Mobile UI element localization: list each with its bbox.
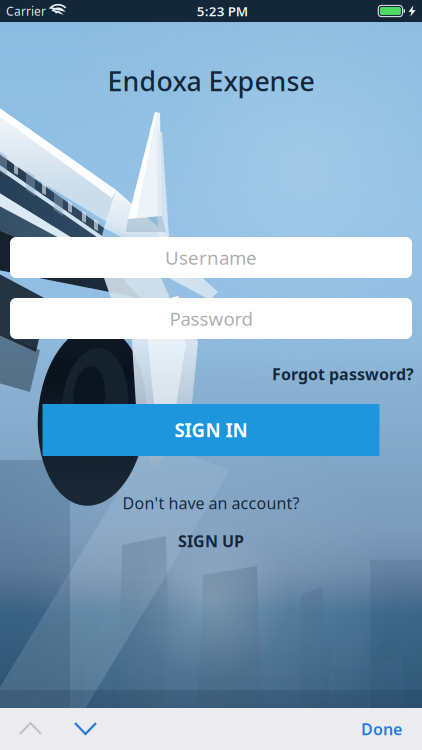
button[interactable]: Password: [10, 298, 412, 339]
staticText: Password: [169, 306, 252, 331]
staticText: Username: [165, 245, 257, 270]
button[interactable]: Username: [10, 237, 412, 278]
staticText: Done: [361, 718, 402, 740]
staticText: Don't have an account?: [122, 492, 299, 514]
button[interactable]: Next field: [58, 708, 116, 750]
button[interactable]: Previous field: [0, 708, 58, 750]
staticText: SIGN IN: [174, 418, 247, 442]
button[interactable]: SIGN IN: [42, 404, 379, 456]
button[interactable]: Done: [347, 706, 422, 750]
staticText: SIGN UP: [178, 530, 244, 552]
staticText: Carrier: [6, 3, 46, 19]
button[interactable]: Forgot password?: [272, 365, 414, 383]
button[interactable]: SIGN UP: [166, 528, 256, 554]
staticText: Endoxa Expense: [107, 63, 314, 99]
staticText: Forgot password?: [272, 363, 414, 385]
staticText: 5:23 PM: [197, 2, 248, 20]
